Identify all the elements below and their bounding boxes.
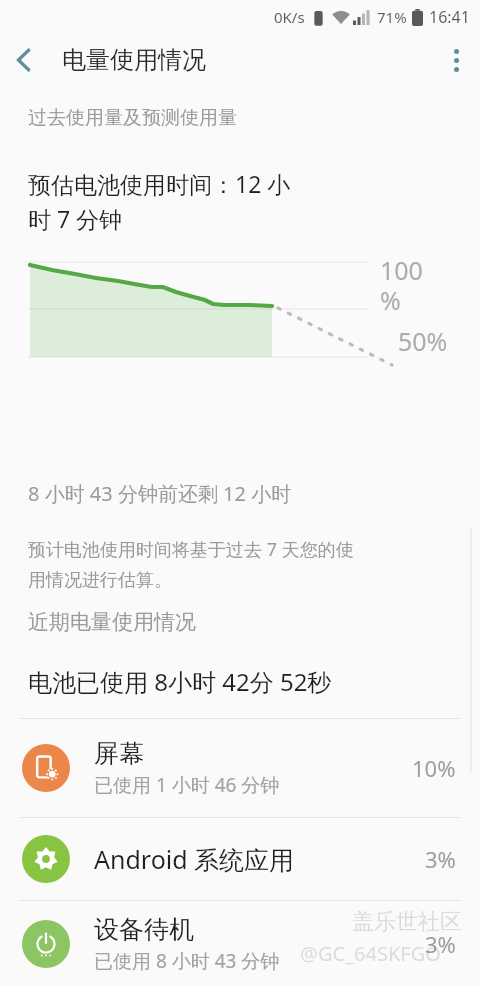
staticText: 屏幕 xyxy=(94,738,144,769)
button[interactable]: More options xyxy=(432,36,480,84)
staticText: 电池已使用 8小时 42分 52秒 xyxy=(28,665,332,698)
staticText: 8 小时 43 分钟前还剩 12 小时 xyxy=(28,480,292,507)
staticText: 71% xyxy=(377,7,407,27)
staticText: 过去使用量及预测使用量 xyxy=(28,106,237,130)
staticText: Android 系统应用 xyxy=(94,842,295,876)
staticText: 盖乐世社区 xyxy=(352,908,462,936)
staticText: 16:41 xyxy=(429,6,470,28)
staticText: 3% xyxy=(425,929,456,959)
staticText: 50% xyxy=(398,324,448,358)
staticText: 已使用 8 小时 43 分钟 xyxy=(94,948,280,974)
staticText: 3% xyxy=(425,844,456,874)
staticText: 10% xyxy=(412,753,456,783)
button[interactable]: 设备待机 xyxy=(0,901,480,986)
staticText: 预估电池使用时间：12 小 时 7 分钟 xyxy=(28,168,291,235)
staticText: 已使用 1 小时 46 分钟 xyxy=(94,772,280,798)
staticText: 0K/s xyxy=(274,7,305,27)
staticText: 电量使用情况 xyxy=(62,45,206,75)
button[interactable]: 屏幕 xyxy=(0,719,480,817)
button[interactable]: Android 系统应用 xyxy=(0,818,480,900)
button[interactable]: Back xyxy=(0,36,48,84)
staticText: 设备待机 xyxy=(94,914,194,945)
staticText: 近期电量使用情况 xyxy=(28,609,196,635)
staticText: @GC_64SKFGO xyxy=(300,940,441,967)
staticText: 100 % xyxy=(380,253,423,318)
staticText: 预计电池使用时间将基于过去 7 天您的使 用情况进行估算。 xyxy=(28,537,354,591)
